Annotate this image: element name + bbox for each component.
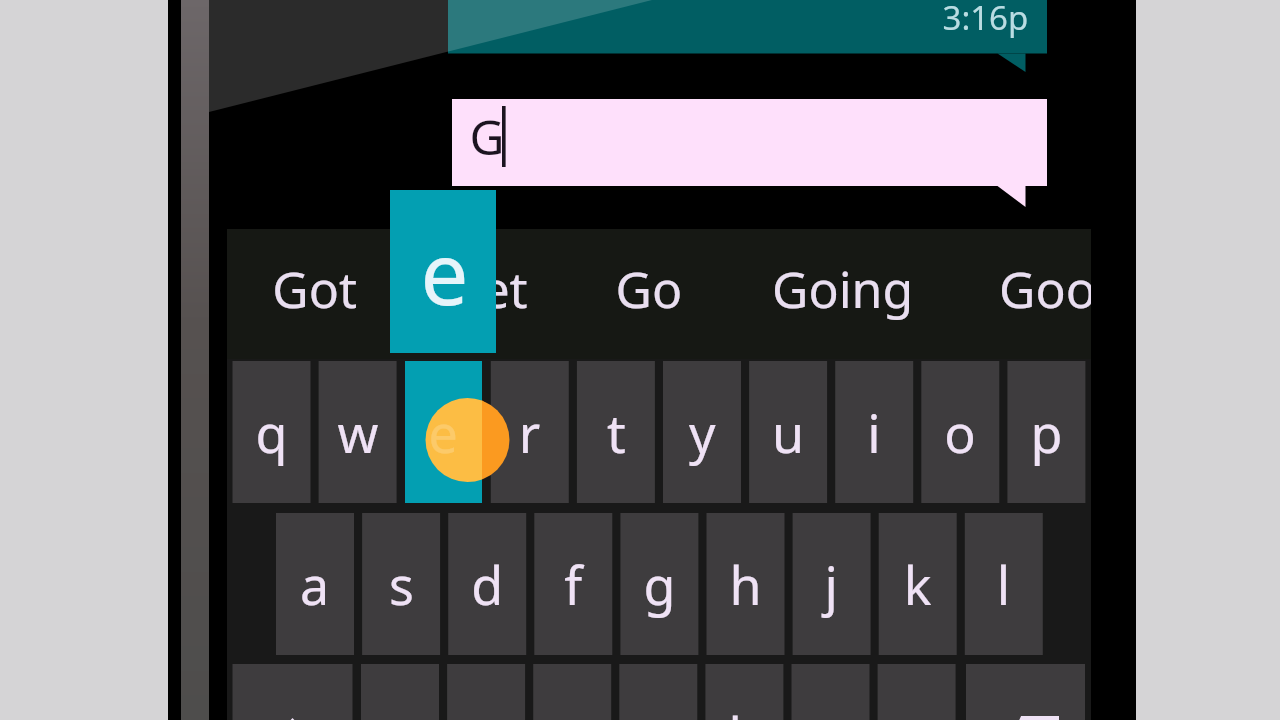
button[interactable]: t <box>577 361 655 503</box>
staticText: Going <box>834 294 837 295</box>
button[interactable]: s <box>362 513 440 655</box>
button[interactable]: Good <box>940 229 1091 359</box>
button[interactable]: r <box>491 361 569 503</box>
button[interactable]: h <box>707 513 785 655</box>
button[interactable]: k <box>879 513 957 655</box>
button[interactable]: Backspace <box>966 664 1085 720</box>
button[interactable]: a <box>276 513 354 655</box>
button[interactable]: l <box>965 513 1043 655</box>
button[interactable]: q <box>233 361 311 503</box>
button[interactable]: G <box>452 99 1047 186</box>
button[interactable]: f <box>534 513 612 655</box>
button[interactable]: Shift <box>233 664 353 720</box>
button[interactable]: Going <box>730 229 940 359</box>
button[interactable]: w <box>319 361 397 503</box>
button[interactable]: e <box>405 361 483 503</box>
button[interactable]: d <box>448 513 526 655</box>
button[interactable]: b <box>705 664 783 720</box>
button[interactable]: i <box>835 361 913 503</box>
button[interactable]: Go <box>560 229 730 359</box>
button[interactable]: p <box>1007 361 1085 503</box>
button[interactable]: Got <box>227 229 370 359</box>
button[interactable]: j <box>793 513 871 655</box>
button[interactable]: g <box>620 513 698 655</box>
button[interactable]: Get <box>370 229 560 359</box>
button[interactable]: u <box>749 361 827 503</box>
button[interactable]: y <box>663 361 741 503</box>
button[interactable]: o <box>921 361 999 503</box>
